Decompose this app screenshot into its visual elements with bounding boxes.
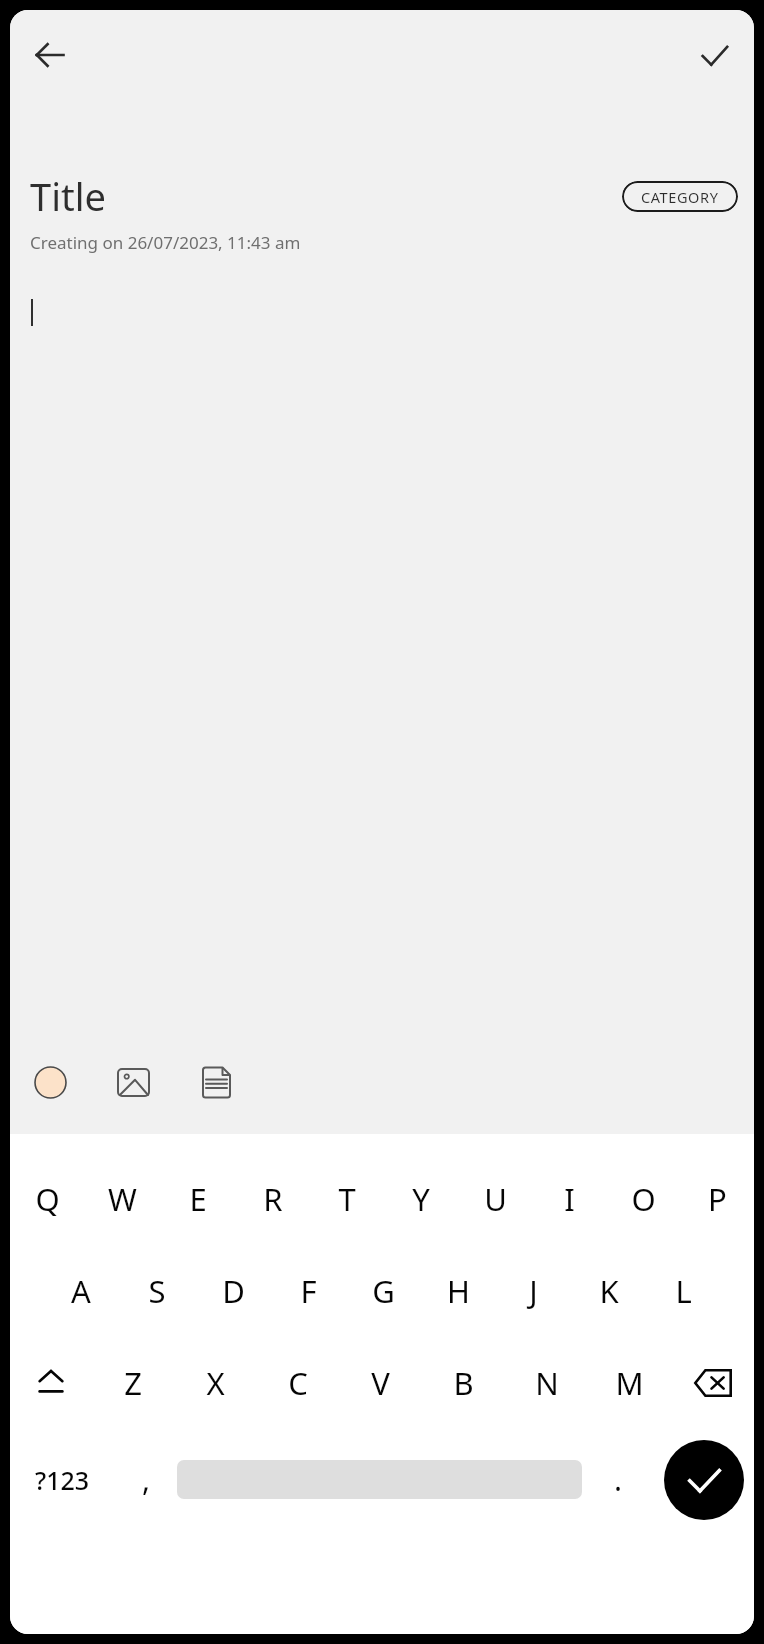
button[interactable]: R xyxy=(235,1160,310,1238)
button[interactable]: Save xyxy=(688,29,740,81)
button[interactable]: Shift xyxy=(10,1344,92,1422)
staticText: Creating on 26/07/2023, 11:43 am xyxy=(30,231,301,254)
staticText: I xyxy=(564,1178,575,1220)
button[interactable]: X xyxy=(174,1344,256,1422)
button[interactable]: V xyxy=(339,1344,422,1422)
staticText: P xyxy=(708,1178,727,1220)
staticText: ?123 xyxy=(35,1463,90,1497)
staticText: T xyxy=(338,1178,356,1220)
button[interactable]: Backspace xyxy=(671,1344,754,1422)
button[interactable]: Enter xyxy=(664,1440,744,1520)
staticText: Z xyxy=(124,1362,142,1404)
button[interactable]: K xyxy=(571,1252,646,1330)
staticText: G xyxy=(372,1270,395,1312)
button[interactable]: W xyxy=(85,1160,160,1238)
staticText: O xyxy=(631,1178,656,1220)
staticText: . xyxy=(614,1459,623,1500)
button[interactable]: J xyxy=(496,1252,571,1330)
button[interactable]: Note colour xyxy=(24,1056,76,1108)
staticText: X xyxy=(206,1362,225,1404)
button[interactable]: T xyxy=(310,1160,384,1238)
button[interactable]: P xyxy=(680,1160,754,1238)
button[interactable]: O xyxy=(606,1160,680,1238)
staticText: M xyxy=(615,1362,644,1404)
staticText: Q xyxy=(35,1178,60,1220)
staticText: H xyxy=(447,1270,470,1312)
staticText: B xyxy=(453,1362,474,1404)
button[interactable]: D xyxy=(195,1252,271,1330)
button[interactable]: Y xyxy=(384,1160,458,1238)
staticText: U xyxy=(484,1178,507,1220)
staticText: Title xyxy=(30,170,106,222)
button[interactable]: Back xyxy=(24,29,76,81)
button[interactable]: N xyxy=(505,1344,588,1422)
button[interactable]: B xyxy=(422,1344,505,1422)
staticText: , xyxy=(142,1459,151,1500)
staticText: N xyxy=(535,1362,559,1404)
staticText: K xyxy=(599,1270,619,1312)
staticText: W xyxy=(108,1178,137,1220)
button[interactable]: F xyxy=(271,1252,346,1330)
staticText: R xyxy=(263,1178,283,1220)
button[interactable]: U xyxy=(458,1160,532,1238)
button[interactable]: , xyxy=(115,1432,177,1527)
staticText: Y xyxy=(412,1178,430,1220)
button[interactable]: M xyxy=(588,1344,671,1422)
button[interactable]: L xyxy=(646,1252,721,1330)
button[interactable]: S xyxy=(119,1252,195,1330)
staticText: J xyxy=(529,1270,538,1312)
staticText: A xyxy=(71,1270,91,1312)
staticText: E xyxy=(189,1178,207,1220)
button[interactable]: Q xyxy=(10,1160,85,1238)
button[interactable]: Z xyxy=(92,1344,174,1422)
staticText: C xyxy=(288,1362,308,1404)
button[interactable]: I xyxy=(532,1160,606,1238)
button[interactable]: CATEGORY xyxy=(622,181,738,212)
button[interactable]: ?123 xyxy=(10,1432,115,1527)
staticText: CATEGORY xyxy=(641,187,719,207)
staticText: S xyxy=(148,1270,166,1312)
button[interactable]: C xyxy=(256,1344,339,1422)
staticText: V xyxy=(371,1362,390,1404)
staticText: F xyxy=(300,1270,317,1312)
button[interactable]: Add image xyxy=(107,1056,159,1108)
button[interactable]: H xyxy=(421,1252,496,1330)
button[interactable]: Add checklist xyxy=(190,1056,242,1108)
staticText: D xyxy=(222,1270,245,1312)
button[interactable]: A xyxy=(43,1252,119,1330)
button[interactable]: . xyxy=(582,1432,654,1527)
staticText: L xyxy=(675,1270,692,1312)
button[interactable]: G xyxy=(346,1252,421,1330)
button[interactable]: E xyxy=(160,1160,235,1238)
